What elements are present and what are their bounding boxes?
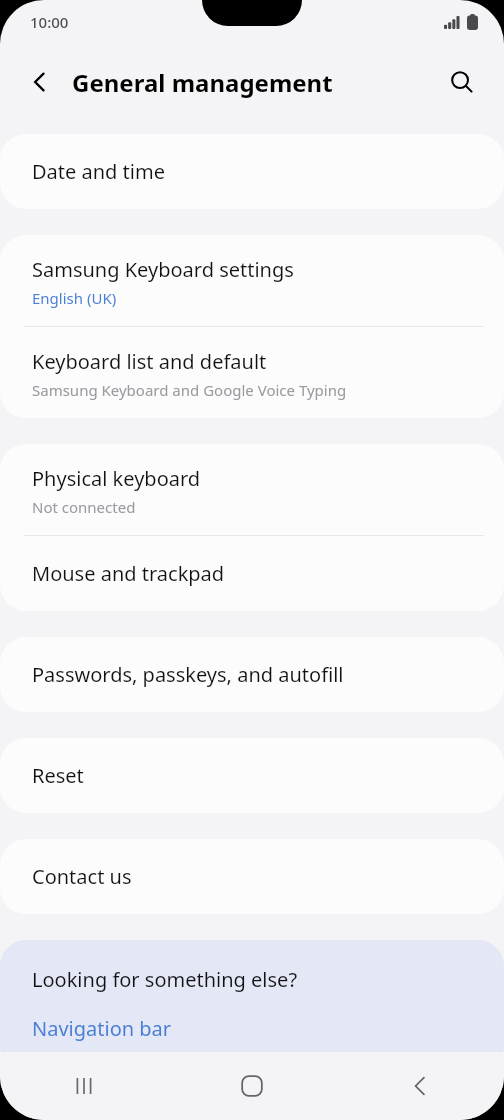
staticText: Samsung Keyboard and Google Voice Typing (32, 380, 347, 400)
button[interactable]: Physical keyboard (0, 444, 504, 535)
button[interactable]: Back (14, 56, 66, 108)
button[interactable]: Reset (0, 738, 504, 813)
staticText: General management (72, 66, 333, 99)
button[interactable]: Back (336, 1052, 504, 1120)
button[interactable]: Passwords, passkeys, and autofill (0, 637, 504, 712)
button[interactable]: Home (168, 1052, 336, 1120)
staticText: Contact us (32, 863, 132, 890)
staticText: Mouse and trackpad (32, 560, 225, 587)
button[interactable]: Contact us (0, 839, 504, 914)
button[interactable]: Date and time (0, 134, 504, 209)
staticText: Reset (32, 762, 84, 789)
button[interactable]: Navigation bar (0, 1015, 504, 1042)
staticText: Physical keyboard (32, 465, 201, 492)
button[interactable]: Mouse and trackpad (0, 536, 504, 611)
staticText: Samsung Keyboard settings (32, 256, 294, 283)
button[interactable]: Samsung Keyboard settings (0, 235, 504, 326)
staticText: Passwords, passkeys, and autofill (32, 661, 344, 688)
staticText: Keyboard list and default (32, 348, 267, 375)
staticText: Navigation bar (32, 1015, 172, 1042)
button[interactable]: Keyboard list and default (0, 327, 504, 418)
button[interactable]: Search (436, 56, 488, 108)
staticText: Looking for something else? (32, 966, 298, 993)
staticText: English (UK) (32, 288, 117, 308)
staticText: Not connected (32, 497, 136, 517)
staticText: 10:00 (30, 12, 69, 32)
staticText: Date and time (32, 158, 165, 185)
button[interactable]: Recents (0, 1052, 168, 1120)
